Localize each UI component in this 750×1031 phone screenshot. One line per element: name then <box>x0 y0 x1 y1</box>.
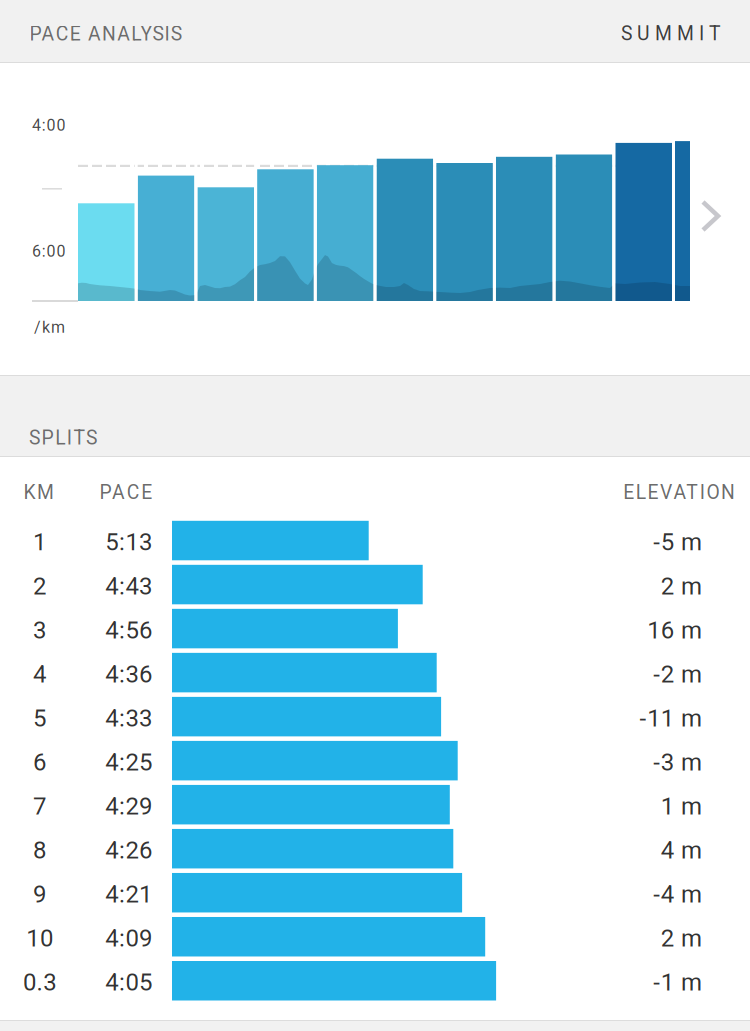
staticText: -11 m <box>640 704 702 732</box>
staticText: SPLITS <box>29 426 97 449</box>
staticText: 9 <box>33 880 46 908</box>
staticText: 10 <box>26 924 53 952</box>
staticText: 2 m <box>661 924 702 952</box>
staticText: SUMMIT <box>621 22 721 45</box>
staticText: -1 m <box>653 968 702 996</box>
staticText: 6 <box>33 748 46 776</box>
staticText: KM <box>23 481 54 504</box>
staticText: 4:21 <box>105 880 152 908</box>
staticText: 4:26 <box>105 836 152 864</box>
staticText: 1 <box>33 528 46 556</box>
staticText: 4 m <box>661 836 702 864</box>
staticText: /km <box>34 318 65 337</box>
button[interactable]: Next chart <box>0 0 750 1031</box>
staticText: 16 m <box>647 616 702 644</box>
staticText: 4:56 <box>105 616 152 644</box>
staticText: ELEVATION <box>623 481 735 504</box>
staticText: 2 <box>33 572 46 600</box>
staticText: 2 m <box>661 572 702 600</box>
staticText: 4:43 <box>105 572 152 600</box>
staticText: -4 m <box>653 880 702 908</box>
staticText: 5 <box>33 704 46 732</box>
staticText: -2 m <box>653 660 702 688</box>
staticText: PACE <box>99 481 152 504</box>
staticText: 4:09 <box>105 924 152 952</box>
staticText: 0.3 <box>23 968 56 996</box>
staticText: -5 m <box>653 528 702 556</box>
staticText: 8 <box>33 836 46 864</box>
staticText: 4:29 <box>105 792 152 820</box>
staticText: 5:13 <box>105 528 152 556</box>
staticText: 7 <box>33 792 46 820</box>
staticText: 6:00 <box>32 242 65 261</box>
staticText: 4:33 <box>105 704 152 732</box>
staticText: 4:36 <box>105 660 152 688</box>
staticText: 4 <box>33 660 46 688</box>
staticText: 1 m <box>661 792 702 820</box>
button[interactable]: SUMMIT <box>0 0 200 62</box>
staticText: -3 m <box>653 748 702 776</box>
staticText: 4:00 <box>32 116 65 135</box>
staticText: PACE ANALYSIS <box>29 22 182 45</box>
staticText: 4:25 <box>105 748 152 776</box>
staticText: 4:05 <box>105 968 152 996</box>
staticText: 3 <box>33 616 46 644</box>
